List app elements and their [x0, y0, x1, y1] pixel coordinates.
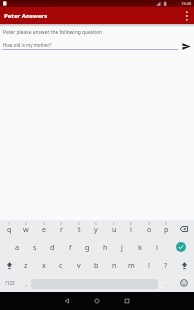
staticText: 9	[148, 222, 150, 226]
button[interactable]: w	[18, 222, 34, 236]
button[interactable]: q	[1, 222, 17, 236]
staticText: Peter please answer the following questi…	[3, 29, 103, 36]
button[interactable]: l	[149, 240, 165, 254]
staticText: d	[50, 242, 55, 252]
button[interactable]: .	[159, 276, 175, 290]
staticText: g	[85, 242, 90, 252]
staticText: p	[164, 224, 169, 234]
staticText: 2	[25, 222, 27, 226]
staticText: !	[148, 260, 150, 270]
button[interactable]: h	[97, 240, 113, 254]
staticText: ?	[164, 260, 168, 270]
staticText: t	[78, 224, 81, 234]
button[interactable]: c	[53, 258, 69, 272]
button[interactable]: i	[123, 222, 139, 236]
staticText: o	[147, 224, 152, 234]
button[interactable]	[176, 222, 192, 236]
button[interactable]: o	[141, 222, 157, 236]
button[interactable]	[112, 292, 142, 310]
button[interactable]	[179, 41, 194, 52]
staticText: s	[33, 242, 37, 252]
button[interactable]: m	[123, 258, 139, 272]
staticText: r	[60, 224, 63, 234]
staticText: .	[166, 280, 168, 287]
staticText: y	[94, 224, 98, 234]
staticText: k	[138, 242, 142, 252]
button[interactable]	[173, 239, 189, 255]
button[interactable]	[52, 292, 82, 310]
button[interactable]	[180, 7, 194, 24]
staticText: 6	[95, 222, 97, 226]
button[interactable]: r	[53, 222, 69, 236]
button[interactable]	[176, 276, 192, 290]
staticText: How old is my mother?	[3, 42, 52, 48]
staticText: f	[69, 242, 72, 252]
button[interactable]: e	[36, 222, 52, 236]
staticText: ,	[26, 280, 28, 287]
button[interactable]: f	[62, 240, 78, 254]
staticText: ?123	[5, 280, 15, 286]
button[interactable]: s	[27, 240, 43, 254]
button[interactable]: n	[106, 258, 122, 272]
staticText: m	[128, 260, 135, 270]
button[interactable]: ,	[19, 276, 35, 290]
staticText: 5	[78, 222, 80, 226]
staticText: Peter Answers	[4, 12, 48, 20]
button[interactable]: k	[132, 240, 148, 254]
button[interactable]: !	[141, 258, 157, 272]
button[interactable]: ?123	[2, 276, 18, 290]
staticText: x	[42, 260, 46, 270]
button[interactable]: g	[79, 240, 95, 254]
staticText: w	[23, 224, 29, 234]
staticText: q	[7, 224, 12, 234]
staticText: e	[42, 224, 47, 234]
button[interactable]	[82, 292, 112, 310]
staticText: 7	[113, 222, 115, 226]
staticText: a	[15, 242, 20, 252]
staticText: 0	[165, 222, 167, 226]
staticText: h	[103, 242, 108, 252]
button[interactable]	[176, 258, 192, 272]
button[interactable]	[1, 258, 17, 272]
button[interactable]: j	[114, 240, 130, 254]
button[interactable]: b	[88, 258, 104, 272]
button[interactable]: x	[36, 258, 52, 272]
button[interactable]: a	[9, 240, 25, 254]
button[interactable]: t	[71, 222, 87, 236]
button[interactable]: y	[88, 222, 104, 236]
button[interactable]: v	[71, 258, 87, 272]
staticText: j	[121, 242, 123, 252]
button[interactable]: d	[44, 240, 60, 254]
staticText: b	[94, 260, 99, 270]
staticText: n	[112, 260, 117, 270]
staticText: 3	[43, 222, 45, 226]
staticText: 1	[8, 222, 10, 226]
staticText: 13:48	[181, 1, 192, 6]
staticText: 8	[130, 222, 132, 226]
button[interactable]: p	[158, 222, 174, 236]
staticText: v	[77, 260, 81, 270]
staticText: 4	[60, 222, 62, 226]
button[interactable]: How old is my mother?	[0, 39, 194, 52]
button[interactable]: z	[18, 258, 34, 272]
button[interactable]: u	[106, 222, 122, 236]
staticText: i	[130, 224, 132, 234]
button[interactable]: ?	[158, 258, 174, 272]
staticText: l	[156, 242, 158, 252]
staticText: z	[24, 260, 28, 270]
staticText: u	[112, 224, 117, 234]
staticText: c	[59, 260, 63, 270]
